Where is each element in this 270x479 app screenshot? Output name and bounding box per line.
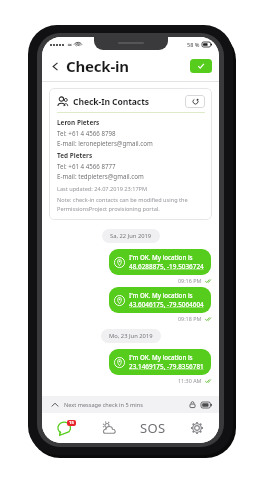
- staticText: Next message check in 5 mins: [64, 401, 143, 409]
- button[interactable]: SOS: [131, 413, 175, 443]
- button[interactable]: Settings: [175, 413, 219, 443]
- staticText: 48.6288875, -19.5036724: [129, 262, 204, 271]
- button[interactable]: I'm OK. My location is: [109, 249, 211, 275]
- button[interactable]: Messages: [42, 413, 87, 443]
- staticText: Mo, 23 Jun 2019: [109, 332, 153, 340]
- staticText: I'm OK. My location is: [129, 253, 193, 261]
- staticText: 58 %: [187, 41, 200, 48]
- staticText: ≈: [67, 41, 73, 48]
- button[interactable]: Next message check in 5 mins: [42, 396, 219, 413]
- staticText: Note: check-in contacts can be modified …: [57, 196, 188, 204]
- button[interactable]: Weather: [87, 413, 131, 443]
- button[interactable]: Check-In Contacts: [49, 88, 212, 220]
- staticText: PermissionsProject provisioning portal.: [57, 205, 160, 213]
- staticText: E-mail: tedpieters@gmail.com: [57, 172, 144, 180]
- staticText: Tel: +61 4 4566 8798: [57, 129, 116, 137]
- staticText: 15: [69, 420, 74, 426]
- staticText: Ted Pieters: [57, 151, 93, 160]
- button[interactable]: Back: [46, 57, 64, 75]
- button[interactable]: I'm OK. My location is: [109, 349, 211, 375]
- staticText: I'm OK. My location is: [129, 353, 193, 361]
- staticText: Sa, 22 Jun 2019: [110, 232, 152, 240]
- staticText: 09:16 PM: [178, 277, 202, 284]
- staticText: E-mail: leronepieters@gmail.com: [57, 139, 153, 147]
- staticText: 23.1469175, -79.8356781: [129, 362, 204, 371]
- staticText: 09:18 PM: [178, 315, 202, 322]
- button[interactable]: Confirm check-in: [190, 59, 212, 73]
- staticText: Check-in: [66, 56, 129, 76]
- staticText: 43.6046175, -79.5064604: [129, 300, 204, 309]
- staticText: Leron Pieters: [57, 118, 100, 127]
- staticText: 11:30 AM: [178, 377, 202, 384]
- button[interactable]: I'm OK. My location is: [109, 287, 211, 313]
- staticText: Check-In Contacts: [73, 96, 150, 108]
- staticText: Tel: +61 4 4566 8777: [57, 162, 116, 170]
- staticText: I'm OK. My location is: [129, 291, 193, 299]
- button[interactable]: Refresh contacts: [185, 95, 205, 108]
- staticText: SOS: [140, 419, 166, 437]
- staticText: Last updated: 24.07.2019 23:17PM: [57, 185, 148, 193]
